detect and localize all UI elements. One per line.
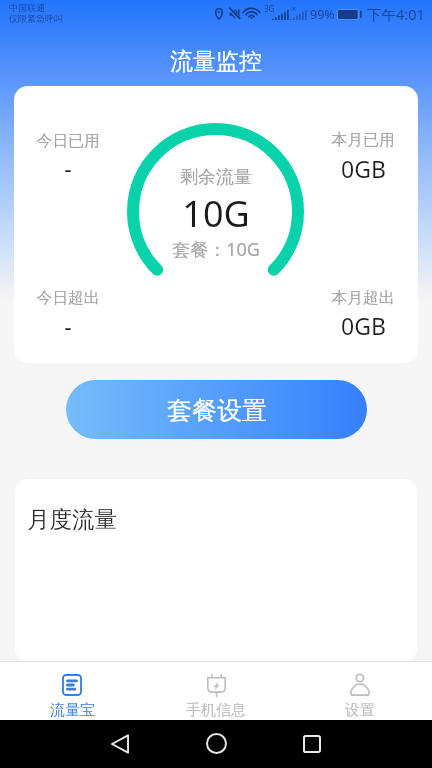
staticText: 今日超出	[36, 288, 100, 308]
other: Home	[206, 733, 227, 754]
button[interactable]: 设置	[288, 662, 432, 721]
staticText: 10G	[182, 189, 250, 238]
staticText: -	[64, 310, 72, 340]
staticText: 流量宝	[50, 701, 95, 720]
other: Back	[111, 734, 129, 754]
staticText: 中国联通	[9, 2, 45, 13]
staticText: 流量监控	[170, 47, 262, 76]
staticText: 仅限紧急呼叫	[9, 13, 63, 24]
staticText: 0GB	[341, 310, 386, 340]
staticText: 今日已用	[36, 131, 100, 151]
staticText: 月度流量	[27, 505, 117, 533]
button[interactable]: 套餐设置	[66, 380, 367, 439]
button[interactable]: 流量宝	[0, 662, 144, 721]
staticText: 套餐：10G	[172, 237, 260, 262]
staticText: 本月超出	[331, 288, 395, 308]
staticText: 设置	[345, 701, 375, 720]
staticText: 手机信息	[186, 701, 246, 720]
staticText: 3G	[264, 3, 275, 14]
button[interactable]: 手机信息	[144, 662, 288, 721]
staticText: 剩余流量	[180, 166, 252, 189]
staticText: 99%	[310, 6, 335, 23]
other: Recents	[303, 735, 321, 753]
staticText: 套餐设置	[167, 395, 267, 426]
staticText: 0GB	[341, 153, 386, 183]
staticText: ×	[291, 2, 297, 14]
staticText: 本月已用	[331, 130, 395, 150]
staticText: -	[64, 152, 72, 182]
staticText: 下午4:01	[367, 4, 425, 24]
